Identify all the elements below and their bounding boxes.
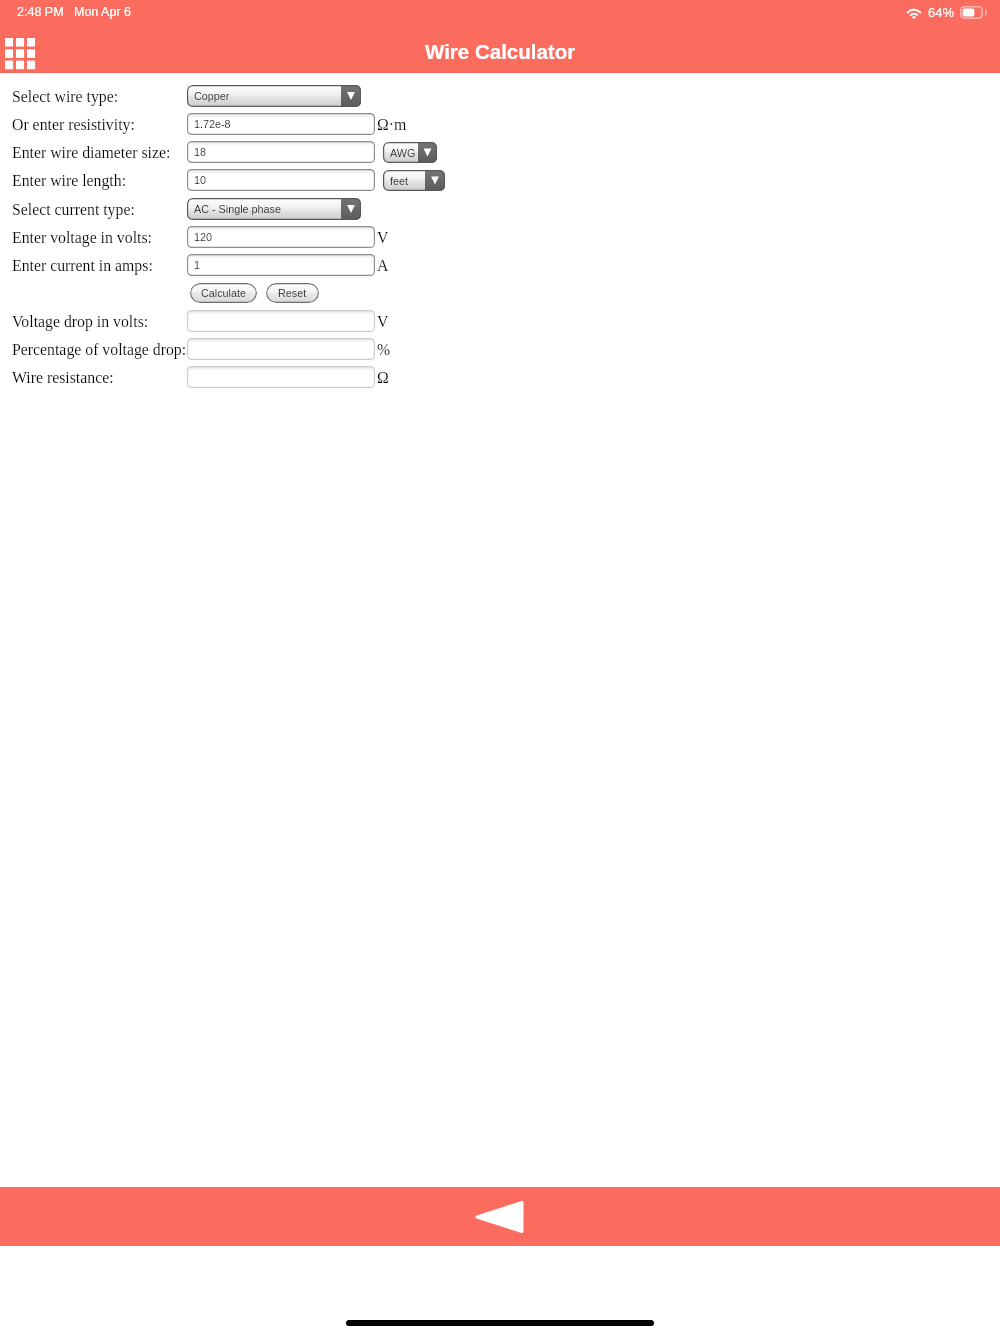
staticText: 10 <box>194 174 207 186</box>
staticText: AC - Single phase <box>194 203 282 215</box>
staticText: 2:48 PM <box>17 5 64 19</box>
staticText: 120 <box>194 231 213 243</box>
button[interactable] <box>187 338 375 360</box>
button[interactable] <box>187 366 375 388</box>
staticText: Enter wire diameter size: <box>12 144 171 161</box>
staticText: Select current type: <box>12 201 135 218</box>
button[interactable]: AC - Single phase <box>187 198 361 220</box>
staticText: V <box>377 229 389 246</box>
staticText: V <box>377 313 389 330</box>
button[interactable]: 1 <box>187 254 375 276</box>
staticText: 1.72e-8 <box>194 118 231 130</box>
staticText: Enter voltage in volts: <box>12 229 152 246</box>
staticText: Enter current in amps: <box>12 257 153 274</box>
staticText: Ω·m <box>377 116 407 133</box>
staticText: Percentage of voltage drop: <box>12 341 187 358</box>
button[interactable]: Copper <box>187 85 361 107</box>
staticText: Select wire type: <box>12 88 119 105</box>
staticText: Mon Apr 6 <box>74 5 131 19</box>
staticText: Or enter resistivity: <box>12 116 135 133</box>
button[interactable]: 120 <box>187 226 375 248</box>
staticText: 18 <box>194 146 207 158</box>
staticText: Enter wire length: <box>12 172 127 189</box>
button[interactable]: AWG <box>383 142 437 163</box>
staticText: 1 <box>194 259 201 271</box>
button[interactable]: Menu <box>0 34 40 73</box>
staticText: % <box>377 341 391 358</box>
staticText: Wire resistance: <box>12 369 114 386</box>
staticText: feet <box>390 175 409 187</box>
staticText: Voltage drop in volts: <box>12 313 149 330</box>
staticText: AWG <box>390 147 416 159</box>
button[interactable]: Reset <box>266 283 319 303</box>
staticText: Wire Calculator <box>425 40 576 63</box>
button[interactable]: Back <box>465 1193 535 1241</box>
staticText: 64% <box>928 5 955 20</box>
staticText: Reset <box>278 287 307 299</box>
staticText: Copper <box>194 90 230 102</box>
button[interactable]: feet <box>383 170 445 191</box>
button[interactable]: Calculate <box>190 283 257 303</box>
button[interactable] <box>187 310 375 332</box>
staticText: A <box>377 257 389 274</box>
staticText: Ω <box>377 369 389 386</box>
button[interactable]: 10 <box>187 169 375 191</box>
button[interactable]: 18 <box>187 141 375 163</box>
button[interactable]: 1.72e-8 <box>187 113 375 135</box>
staticText: Calculate <box>201 287 247 299</box>
